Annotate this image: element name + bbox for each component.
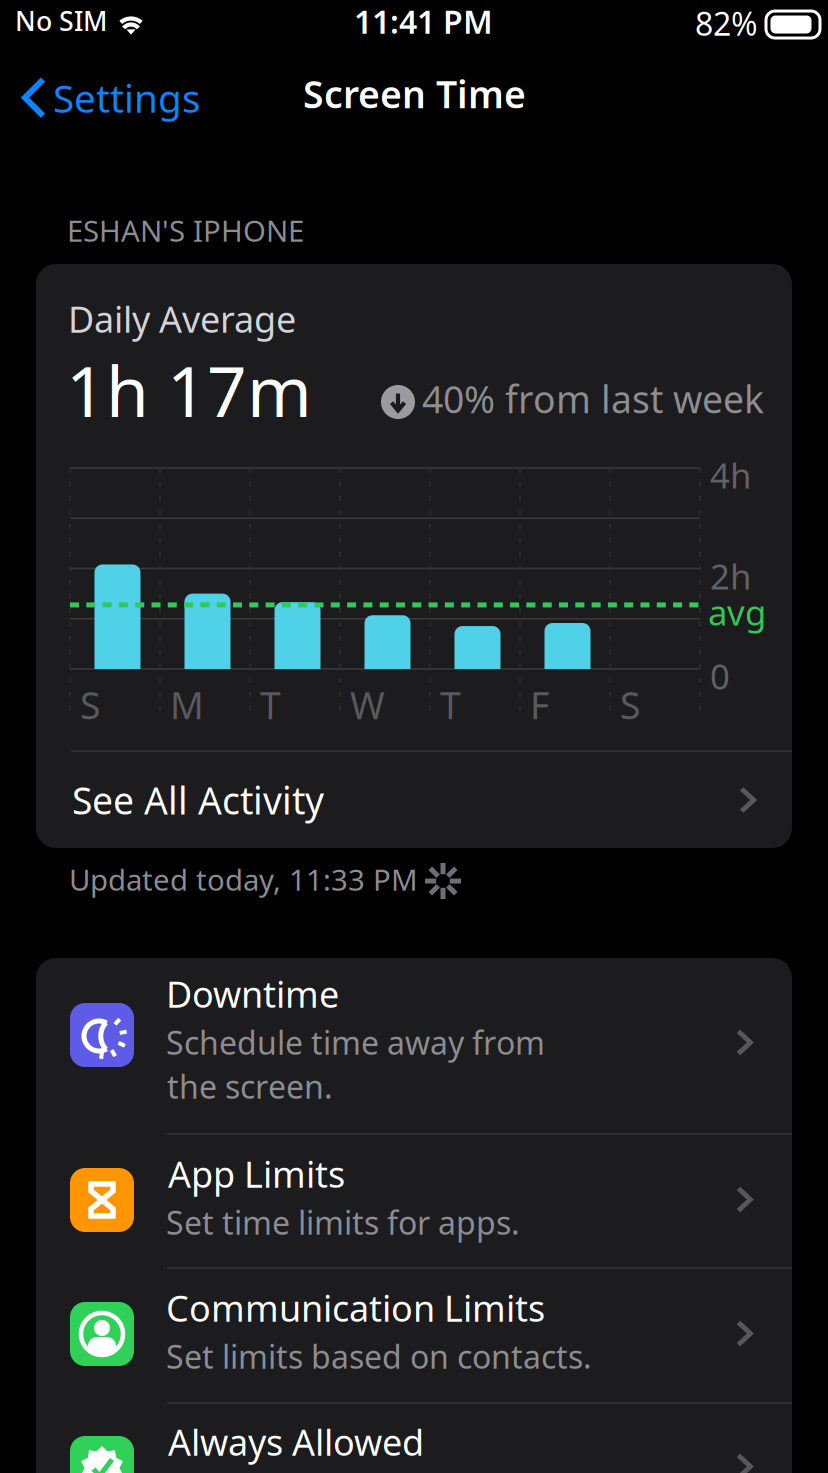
staticText: 82% (695, 2, 758, 44)
staticText: Schedule time away from (166, 1021, 545, 1063)
staticText: F (530, 680, 549, 730)
button[interactable]: See All Activity (36, 752, 792, 848)
staticText: avg (708, 589, 766, 635)
staticText: T (440, 680, 461, 730)
staticText: ESHAN'S IPHONE (67, 211, 304, 250)
staticText: 40% from last week (422, 374, 764, 424)
staticText: 0 (710, 653, 730, 699)
staticText: Downtime (166, 970, 339, 1018)
staticText: Set time limits for apps. (166, 1201, 520, 1243)
staticText: 1h 17m (66, 344, 312, 436)
staticText: the screen. (167, 1065, 333, 1107)
button[interactable] (36, 958, 792, 1139)
staticText: T (260, 680, 281, 730)
staticText: 11:41 PM (354, 0, 493, 42)
staticText: M (170, 680, 204, 730)
staticText: 4h (710, 452, 751, 498)
staticText: See All Activity (72, 775, 324, 825)
staticText: Always Allowed (168, 1418, 424, 1466)
button[interactable] (36, 1139, 792, 1273)
button[interactable] (36, 1273, 792, 1407)
button[interactable] (36, 1407, 792, 1473)
staticText: 2h (710, 553, 751, 599)
staticText: Settings (53, 72, 201, 123)
staticText: Set limits based on contacts. (166, 1335, 592, 1377)
staticText: Updated today, 11:33 PM (69, 860, 418, 899)
staticText: S (620, 680, 640, 730)
staticText: W (350, 680, 385, 730)
staticText: Screen Time (303, 69, 526, 119)
button[interactable]: Settings (14, 70, 207, 125)
staticText: No SIM (15, 3, 107, 38)
staticText: Communication Limits (166, 1284, 545, 1332)
staticText: S (80, 680, 100, 730)
staticText: Daily Average (68, 295, 296, 343)
staticText: App Limits (168, 1150, 345, 1198)
